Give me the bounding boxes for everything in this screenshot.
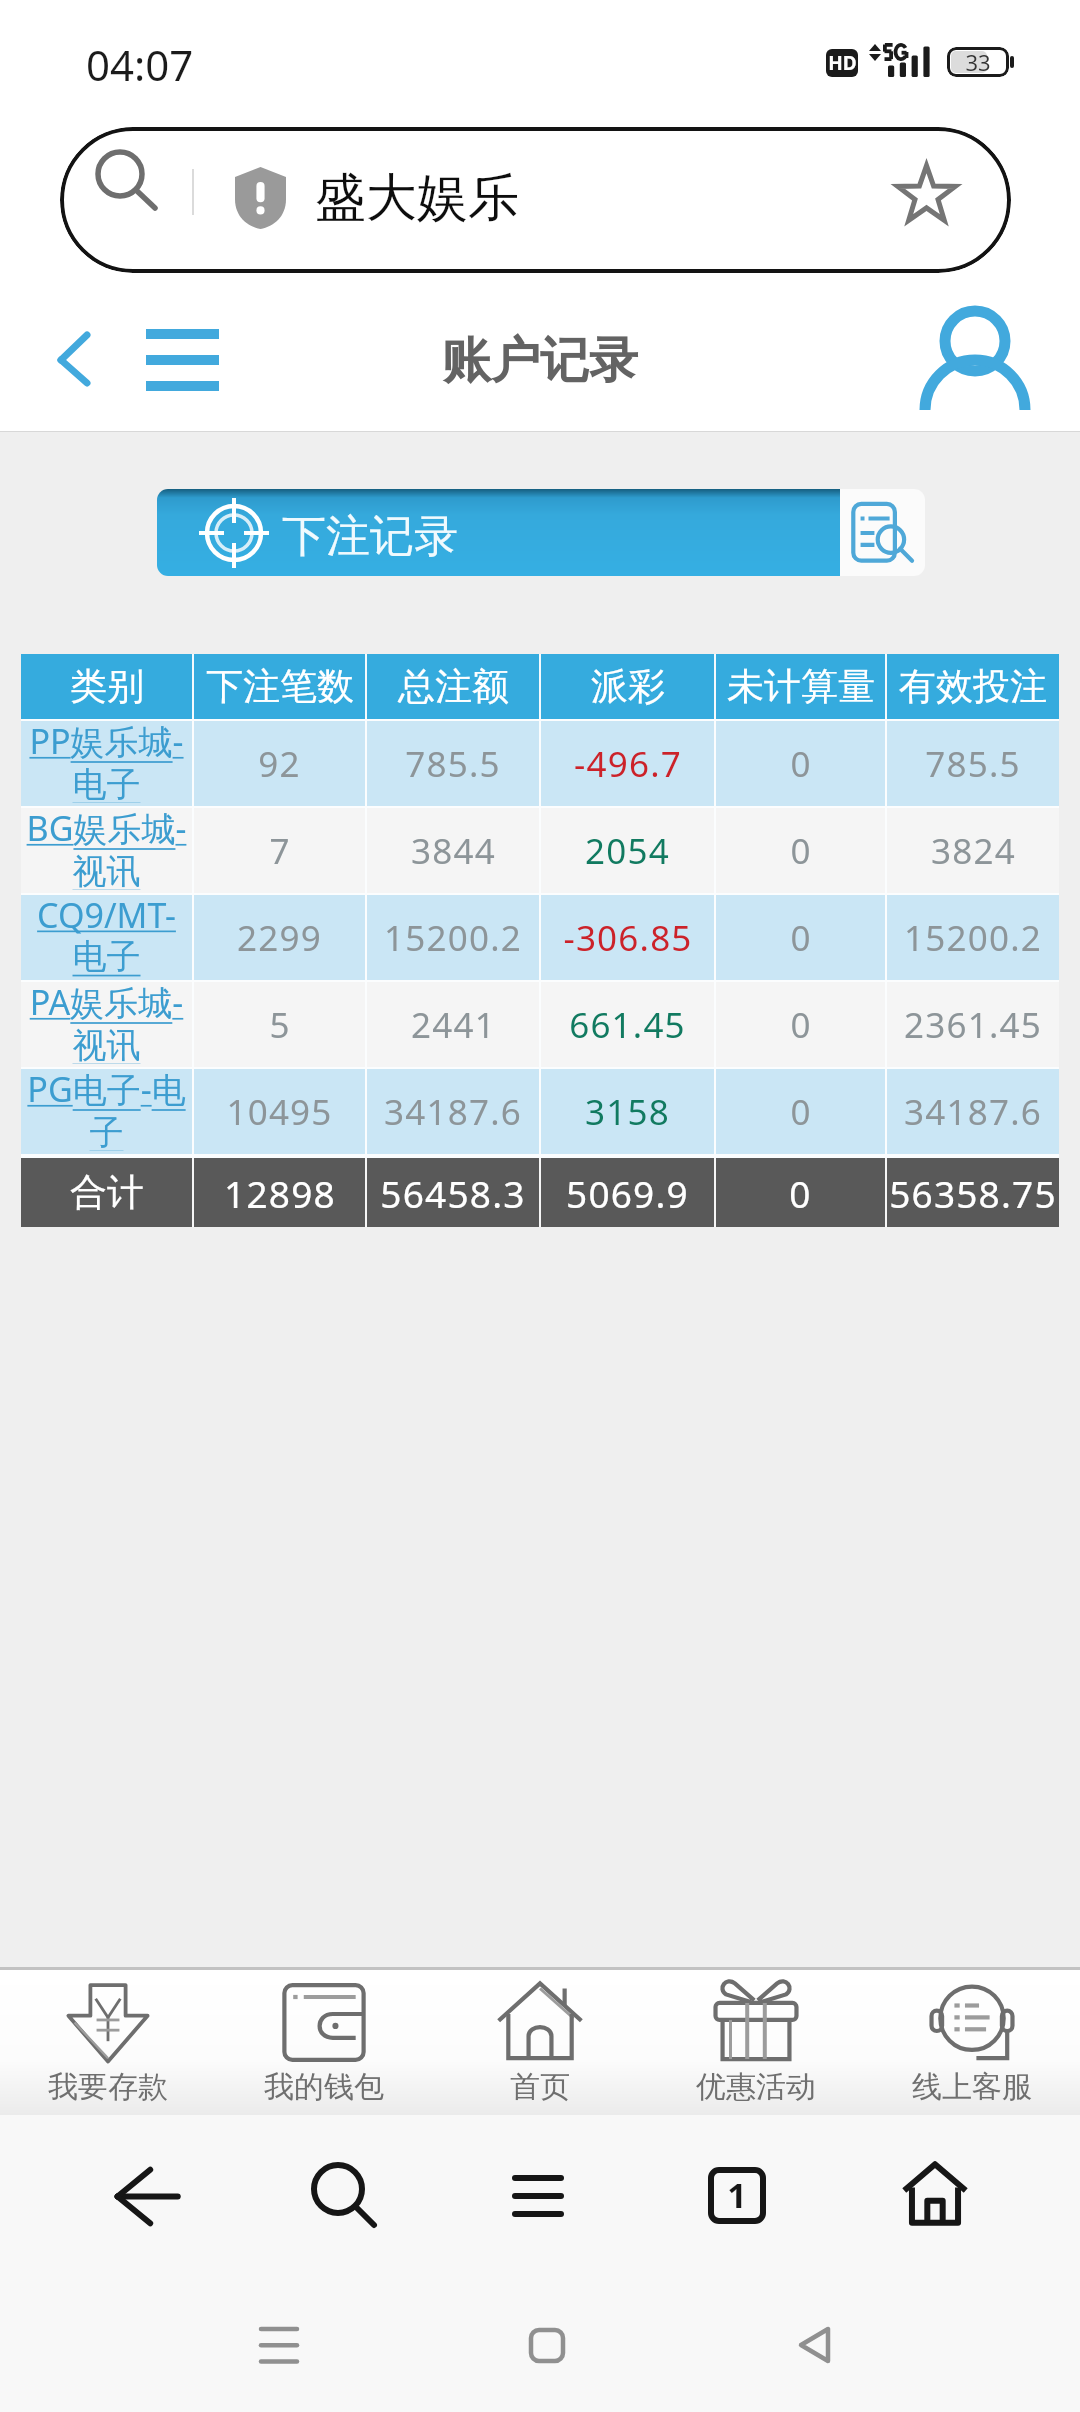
button[interactable]: Tabs — [686, 2145, 788, 2246]
staticText: CQ9/MT-电子 — [24, 892, 189, 977]
button[interactable]: Back — [40, 300, 110, 410]
staticText: 2361.45 — [904, 1001, 1042, 1049]
button[interactable]: Search records — [840, 489, 925, 576]
button[interactable]: Search — [292, 2143, 396, 2247]
staticText: 10495 — [226, 1088, 333, 1136]
staticText: 线上客服 — [912, 2068, 1032, 2106]
staticText: PA娱乐城-视讯 — [24, 979, 189, 1064]
staticText: 5069.9 — [566, 1168, 689, 1218]
staticText: 优惠活动 — [696, 2068, 816, 2106]
staticText: PP娱乐城-电子 — [24, 718, 189, 803]
staticText: 34187.6 — [384, 1088, 522, 1136]
staticText: 92 — [258, 740, 301, 788]
staticText: 0 — [790, 914, 812, 962]
staticText: 56358.75 — [889, 1168, 1057, 1218]
button[interactable]: Menu — [132, 304, 233, 396]
staticText: 2441 — [411, 1001, 496, 1049]
button[interactable]: 优惠活动 — [648, 1970, 864, 2115]
button[interactable]: Home — [881, 2141, 989, 2246]
button[interactable]: 首页 — [432, 1970, 648, 2115]
staticText: 7 — [269, 827, 291, 875]
staticText: 类别 — [70, 663, 144, 710]
staticText: 盛大娱乐 — [315, 166, 519, 230]
staticText: 账户记录 — [442, 330, 638, 392]
staticText: 34187.6 — [904, 1088, 1042, 1136]
staticText: 12898 — [224, 1168, 336, 1218]
staticText: 未计算量 — [727, 663, 875, 710]
staticText: -306.85 — [563, 914, 693, 962]
button[interactable]: Recents — [231, 2300, 327, 2390]
staticText: 0 — [790, 1001, 812, 1049]
staticText: 15200.2 — [384, 914, 522, 962]
staticText: HD — [828, 50, 857, 76]
staticText: 下注笔数 — [206, 663, 354, 710]
staticText: 56458.3 — [380, 1168, 526, 1218]
staticText: BG娱乐城-视讯 — [24, 805, 189, 890]
button[interactable]: Account — [910, 311, 1040, 431]
button[interactable]: 线上客服 — [864, 1970, 1080, 2115]
staticText: 785.5 — [925, 740, 1021, 788]
staticText: 总注额 — [398, 663, 509, 710]
staticText: 我的钱包 — [264, 2068, 384, 2106]
button[interactable]: Menu — [493, 2156, 583, 2236]
button[interactable]: Home — [499, 2300, 595, 2390]
button[interactable]: Search — [60, 127, 1011, 273]
staticText: 2054 — [585, 827, 670, 875]
button[interactable]: Back — [766, 2300, 862, 2390]
button[interactable]: 我要存款 — [0, 1970, 216, 2115]
other: Bookmark — [895, 164, 958, 224]
staticText: 0 — [790, 1088, 812, 1136]
staticText: 0 — [790, 740, 812, 788]
staticText: 33 — [965, 47, 991, 77]
staticText: 1 — [727, 2172, 747, 2218]
staticText: 15200.2 — [904, 914, 1042, 962]
staticText: 下注记录 — [282, 509, 458, 564]
staticText: 3844 — [411, 827, 496, 875]
staticText: 派彩 — [591, 663, 665, 710]
staticText: 0 — [789, 1168, 812, 1218]
staticText: 661.45 — [569, 1001, 686, 1049]
button[interactable]: 下注记录 — [157, 489, 925, 576]
staticText: 有效投注 — [899, 663, 1047, 710]
staticText: 04:07 — [86, 36, 194, 93]
button[interactable]: 我的钱包 — [216, 1970, 432, 2115]
staticText: 首页 — [510, 2068, 570, 2106]
other: Search — [93, 129, 163, 205]
staticText: 3158 — [585, 1088, 670, 1136]
staticText: 785.5 — [405, 740, 501, 788]
staticText: 合计 — [70, 1169, 144, 1216]
staticText: 我要存款 — [48, 2068, 168, 2106]
staticText: 2299 — [237, 914, 322, 962]
staticText: 5 — [269, 1001, 291, 1049]
staticText: -496.7 — [574, 740, 682, 788]
staticText: PG电子-电子 — [24, 1066, 189, 1151]
button[interactable]: Back — [93, 2146, 201, 2247]
staticText: 0 — [790, 827, 812, 875]
staticText: 3824 — [931, 827, 1016, 875]
